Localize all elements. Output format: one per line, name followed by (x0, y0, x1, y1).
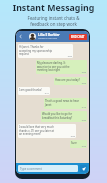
button[interactable]: Back (18, 34, 23, 39)
button[interactable]: END CHAT (69, 34, 87, 40)
button[interactable]: Send (80, 165, 87, 172)
staticText: Hi Janet. Thanks for accepting my sponso… (19, 45, 53, 55)
staticText: Would you like to go for breakfast this … (42, 112, 73, 119)
staticText: 9:20 (42, 119, 86, 122)
staticText: Type a comment (20, 167, 42, 171)
button[interactable]: Would you like to go for breakfast this … (41, 111, 87, 122)
button[interactable]: I am good thanks! (18, 87, 50, 95)
staticText: Lilia E Barbier (38, 33, 60, 37)
button[interactable]: I would love that very much thanks x. I'… (18, 124, 76, 138)
button[interactable]: That's a good news to hear Janet (44, 98, 87, 109)
staticText: I am good thanks! (19, 88, 42, 92)
staticText: Instant Messaging (0, 2, 107, 14)
staticText: How are you today? (55, 78, 80, 82)
staticText: 9:05 (37, 71, 86, 74)
button[interactable]: Sure (70, 140, 87, 148)
staticText: That's a good news to hear Janet (45, 99, 79, 106)
staticText: 9:25 (71, 145, 86, 148)
staticText: Sure (71, 141, 77, 145)
staticText: 9:13 (45, 106, 86, 109)
staticText: Typing to you now (38, 37, 57, 40)
button[interactable]: Back (16, 31, 89, 42)
button[interactable]: Type a comment (18, 165, 78, 172)
staticText: 9:11 (19, 92, 49, 95)
button[interactable]: How are you today? (54, 77, 87, 85)
button[interactable]: My pleasure darling. It was nice to see … (36, 60, 87, 74)
button[interactable]: Hi Janet. Thanks for accepting my sponso… (18, 44, 73, 58)
staticText: 9:05 (55, 82, 86, 85)
staticText: 9:02 (19, 55, 72, 58)
staticText: Featuring instant chats & feedback on st… (0, 15, 107, 27)
staticText: END CHAT (71, 35, 85, 39)
staticText: I would love that very much thanks x. I'… (19, 125, 55, 135)
staticText: 9:22 (19, 135, 75, 138)
staticText: My pleasure darling. It was nice to see … (37, 61, 70, 71)
